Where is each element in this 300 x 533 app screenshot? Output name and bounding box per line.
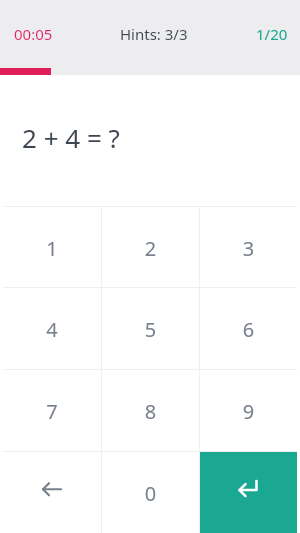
staticText: 4 <box>3 316 101 343</box>
staticText: 00:05 <box>14 24 53 44</box>
staticText: 2 <box>102 235 199 262</box>
button[interactable]: 00:05 <box>14 24 53 44</box>
button[interactable]: 3 <box>200 207 297 287</box>
staticText: 1 <box>3 235 101 262</box>
button[interactable]: 0 <box>102 452 199 533</box>
staticText: 8 <box>102 398 199 425</box>
button[interactable]: 7 <box>3 370 101 451</box>
staticText: 0 <box>102 480 199 507</box>
button[interactable]: Enter <box>200 452 297 533</box>
button[interactable]: Backspace <box>3 452 101 533</box>
staticText: Hints: 3/3 <box>120 24 188 44</box>
staticText: 1/20 <box>256 24 288 44</box>
button[interactable]: 5 <box>102 288 199 369</box>
staticText: 7 <box>3 398 101 425</box>
button[interactable]: 2 <box>102 207 199 287</box>
staticText: 5 <box>102 316 199 343</box>
staticText: 2 + 4 = ? <box>22 120 120 155</box>
button[interactable]: 4 <box>3 288 101 369</box>
staticText: 6 <box>200 316 297 343</box>
button[interactable]: 8 <box>102 370 199 451</box>
button[interactable]: 1/20 <box>256 24 288 44</box>
button[interactable]: 9 <box>200 370 297 451</box>
staticText: 3 <box>200 235 297 262</box>
button[interactable]: Hints: 3/3 <box>120 24 188 44</box>
button[interactable]: 1 <box>3 207 101 287</box>
button[interactable]: 6 <box>200 288 297 369</box>
staticText: 9 <box>200 398 297 425</box>
